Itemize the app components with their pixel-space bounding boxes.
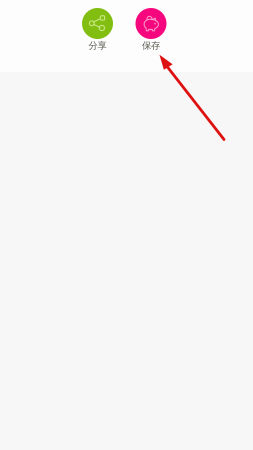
button[interactable]: 分享: [75, 0, 119, 48]
staticText: 保存: [142, 40, 160, 51]
staticText: 分享: [88, 40, 106, 51]
button[interactable]: 保存: [129, 0, 173, 48]
